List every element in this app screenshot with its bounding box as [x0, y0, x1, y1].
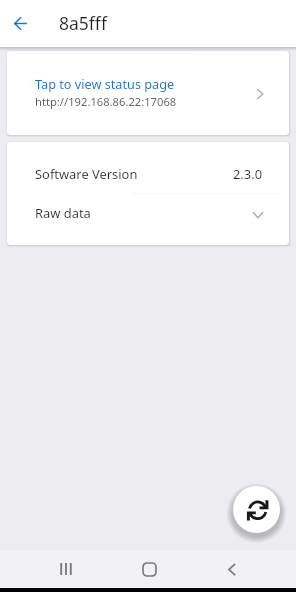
staticText: Software Version [35, 165, 138, 183]
staticText: 8a5fff [59, 11, 107, 35]
button[interactable]: Back [0, 0, 40, 47]
button[interactable]: Tap to view status page [7, 51, 289, 135]
button[interactable]: Home [126, 550, 172, 588]
staticText: 2.3.0 [233, 165, 263, 183]
button[interactable]: Recent apps [43, 550, 89, 588]
button[interactable]: Raw data [7, 194, 289, 232]
button[interactable]: Software Version [7, 155, 289, 193]
staticText: http://192.168.86.22:17068 [35, 94, 177, 109]
button[interactable]: Refresh [233, 486, 280, 533]
button[interactable]: Back [209, 550, 255, 588]
staticText: Tap to view status page [35, 75, 175, 92]
staticText: Raw data [35, 204, 91, 222]
